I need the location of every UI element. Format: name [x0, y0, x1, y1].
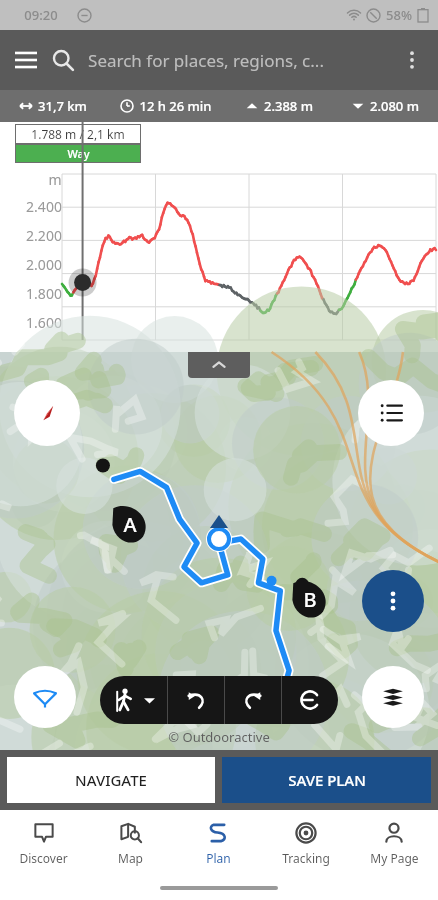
staticText: NAVIGATE: [75, 770, 147, 790]
button[interactable]: More options: [386, 34, 438, 86]
staticText: B: [303, 586, 317, 613]
button[interactable]: Round trip: [282, 676, 338, 724]
staticText: 1.788 m / 2,1 km: [31, 126, 125, 142]
staticText: m: [48, 170, 62, 189]
button[interactable]: Discover: [0, 810, 87, 876]
staticText: 09:20: [24, 6, 58, 24]
staticText: Tracking: [282, 850, 330, 866]
staticText: 12 h 26 min: [139, 97, 212, 115]
staticText: My Page: [370, 850, 419, 866]
button[interactable]: Menu: [0, 34, 52, 86]
staticText: 2.388 m: [264, 97, 313, 115]
button[interactable]: Redo: [225, 676, 281, 724]
staticText: Map: [118, 850, 143, 866]
staticText: A: [123, 511, 137, 538]
button[interactable]: Map layers: [362, 666, 424, 728]
button[interactable]: Search for places, regions, c...: [52, 30, 386, 90]
staticText: 2.080 m: [370, 97, 419, 115]
staticText: 1.800: [26, 284, 62, 303]
staticText: 58%: [386, 6, 412, 24]
button[interactable]: Activity type hiking: [112, 676, 155, 724]
button[interactable]: Activity filter: [14, 666, 76, 728]
button[interactable]: Tracking: [262, 810, 350, 876]
staticText: © Outdooractive: [168, 728, 270, 746]
staticText: SAVE PLAN: [288, 770, 366, 790]
staticText: 1.600: [26, 313, 62, 332]
staticText: 2.400: [26, 197, 62, 216]
staticText: Discover: [19, 850, 68, 866]
button[interactable]: Compass: [14, 380, 80, 446]
button[interactable]: NAVIGATE: [7, 757, 215, 803]
button[interactable]: Waypoint list: [358, 380, 424, 446]
button[interactable]: More map options: [362, 570, 424, 632]
button[interactable]: Plan: [174, 810, 262, 876]
button[interactable]: Collapse elevation profile: [188, 352, 250, 378]
staticText: Plan: [206, 850, 231, 866]
button[interactable]: SAVE PLAN: [222, 757, 431, 803]
staticText: 2.200: [26, 226, 62, 245]
staticText: Search for places, regions, c...: [88, 49, 324, 72]
button[interactable]: My Page: [350, 810, 438, 876]
staticText: 2.000: [26, 255, 62, 274]
staticText: Way: [67, 146, 90, 161]
button[interactable]: Undo: [168, 676, 224, 724]
staticText: 31,7 km: [38, 97, 87, 115]
button[interactable]: Map: [87, 810, 174, 876]
